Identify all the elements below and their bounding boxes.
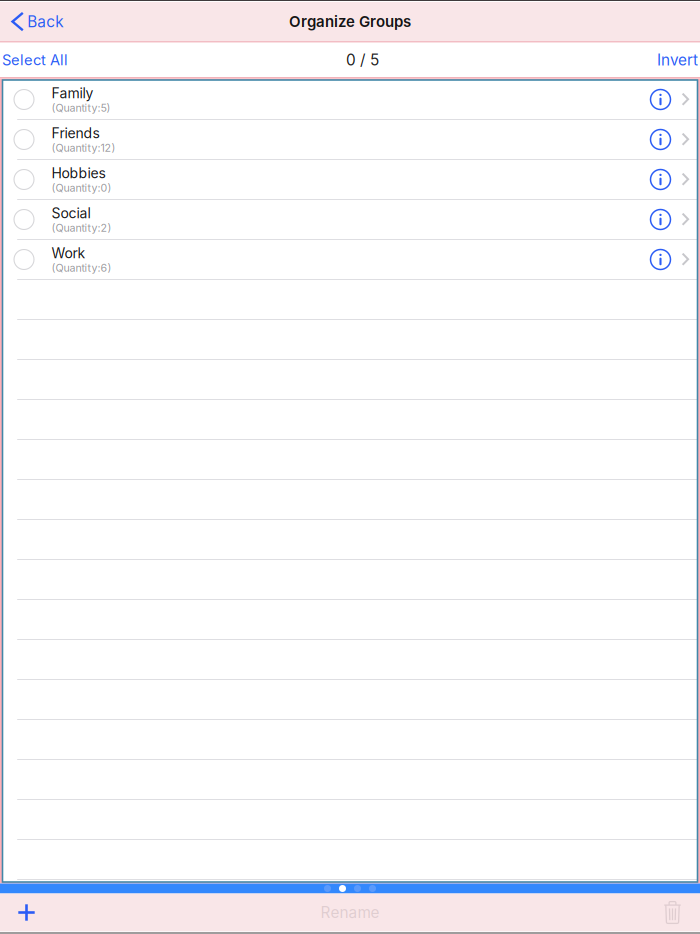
button[interactable]: Invert: [647, 43, 700, 77]
staticText: Work: [51, 245, 85, 261]
button[interactable]: Family: [2, 80, 697, 120]
button[interactable]: Back: [0, 2, 73, 41]
staticText: Social: [51, 205, 90, 221]
button[interactable]: Add group: [0, 893, 53, 931]
staticText: Hobbies: [51, 165, 105, 181]
button[interactable]: Work: [2, 240, 697, 280]
staticText: Invert: [657, 50, 698, 69]
staticText: (Quantity:12): [51, 141, 115, 154]
staticText: Organize Groups: [289, 12, 411, 31]
staticText: Select All: [2, 51, 68, 69]
button[interactable]: Social: [2, 200, 697, 240]
button[interactable]: Friends: [2, 120, 697, 160]
staticText: (Quantity:0): [51, 181, 111, 194]
staticText: Family: [51, 85, 93, 101]
staticText: 0 / 5: [346, 50, 379, 69]
staticText: Rename: [320, 903, 379, 922]
staticText: (Quantity:2): [51, 221, 111, 234]
staticText: (Quantity:6): [51, 261, 111, 274]
staticText: Back: [27, 12, 63, 31]
button[interactable]: Rename: [304, 893, 395, 931]
button[interactable]: Delete: [647, 893, 700, 931]
button[interactable]: Select All: [0, 43, 78, 77]
staticText: (Quantity:5): [51, 101, 110, 114]
button[interactable]: Hobbies: [2, 160, 697, 200]
staticText: Friends: [51, 125, 99, 141]
